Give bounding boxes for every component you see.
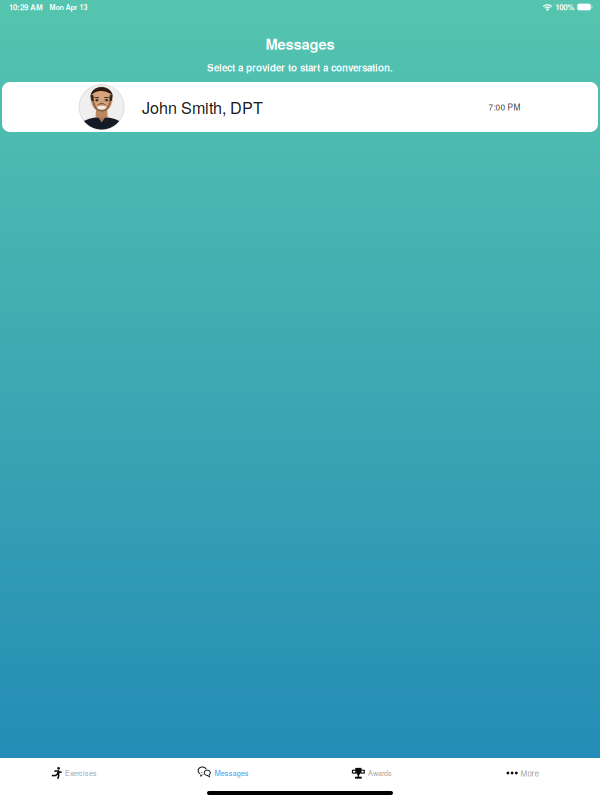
button[interactable]: John Smith, DPT — [2, 82, 598, 132]
staticText: 7:00 PM — [488, 101, 520, 113]
button[interactable]: More — [448, 758, 597, 788]
staticText: Exercises — [65, 768, 97, 778]
staticText: More — [520, 767, 538, 779]
button[interactable]: Messages — [149, 758, 298, 788]
staticText: John Smith, DPT — [142, 95, 263, 118]
staticText: Messages — [265, 33, 334, 54]
staticText: 100% — [555, 1, 574, 13]
staticText: 10:29 AM — [9, 1, 43, 13]
staticText: Select a provider to start a conversatio… — [207, 61, 393, 75]
button[interactable]: Awards — [297, 758, 446, 788]
staticText: Messages — [215, 768, 249, 778]
staticText: Awards — [368, 768, 392, 778]
button[interactable]: Exercises — [0, 758, 149, 788]
staticText: Mon Apr 13 — [49, 2, 87, 12]
